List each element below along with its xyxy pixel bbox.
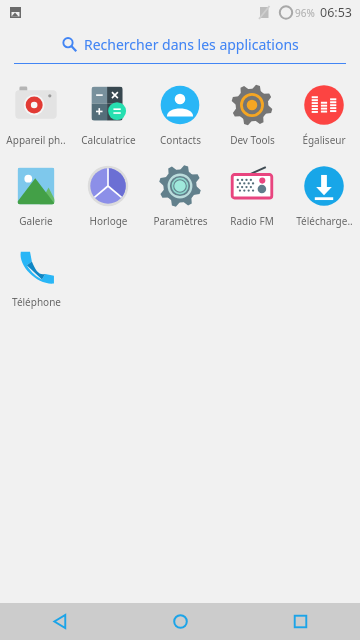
staticText: Horloge — [89, 214, 128, 228]
button[interactable]: Égaliseur — [288, 78, 360, 153]
button[interactable]: Contacts — [144, 78, 216, 153]
staticText: Rechercher dans les applications — [84, 35, 299, 54]
other: Radio FM — [229, 163, 275, 209]
button[interactable]: Télécharge.. — [288, 159, 360, 234]
other: Galerie — [13, 163, 59, 209]
button[interactable]: Dev Tools — [216, 78, 288, 153]
other: Search — [62, 37, 77, 52]
other: Égaliseur — [301, 82, 347, 128]
other: Dev Tools — [229, 82, 275, 128]
button[interactable]: Recent apps — [240, 603, 360, 640]
staticText: Paramètres — [153, 214, 208, 228]
staticText: Télécharge.. — [296, 214, 353, 228]
button[interactable]: Horloge — [72, 159, 144, 234]
button[interactable]: Back — [0, 603, 120, 640]
other: Appareil ph.. — [13, 82, 59, 128]
other: Horloge — [85, 163, 131, 209]
button[interactable]: Paramètres — [144, 159, 216, 234]
button[interactable]: Radio FM — [216, 159, 288, 234]
button[interactable]: Search — [14, 25, 346, 64]
button[interactable]: Home — [120, 603, 240, 640]
button[interactable]: Galerie — [0, 159, 72, 234]
staticText: Calculatrice — [81, 133, 136, 147]
staticText: 96% — [295, 6, 315, 20]
other: Calculatrice — [85, 82, 131, 128]
staticText: 06:53 — [320, 4, 352, 21]
staticText: Dev Tools — [230, 133, 275, 147]
other: Télécharge.. — [301, 163, 347, 209]
staticText: Galerie — [19, 214, 53, 228]
button[interactable]: Calculatrice — [72, 78, 144, 153]
other: Contacts — [157, 82, 203, 128]
staticText: Contacts — [160, 133, 201, 147]
staticText: Radio FM — [230, 214, 274, 228]
button[interactable]: Appareil ph.. — [0, 78, 72, 153]
other: Téléphone — [13, 244, 59, 290]
staticText: Appareil ph.. — [6, 133, 66, 147]
staticText: Égaliseur — [302, 133, 346, 147]
staticText: Téléphone — [12, 295, 61, 309]
other: Paramètres — [157, 163, 203, 209]
button[interactable]: Téléphone — [0, 240, 72, 315]
